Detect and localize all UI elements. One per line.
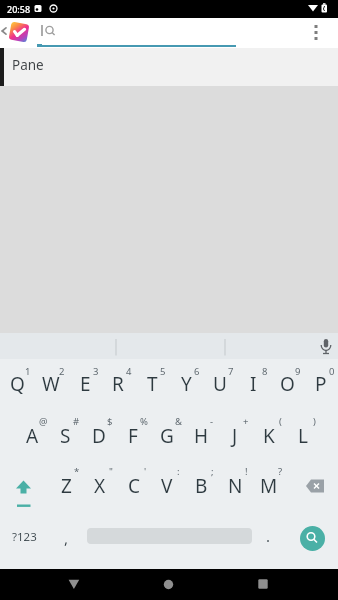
button[interactable] <box>318 337 334 358</box>
staticText: Q <box>10 371 25 397</box>
staticText: % <box>140 415 148 427</box>
button[interactable]: V <box>150 473 184 499</box>
button[interactable]: K <box>252 423 286 449</box>
staticText: K <box>263 423 275 449</box>
staticText: 20:58 <box>7 3 31 15</box>
staticText: * <box>74 465 80 477</box>
button[interactable]: U <box>203 371 237 397</box>
button[interactable] <box>298 474 332 498</box>
staticText: . <box>266 526 271 546</box>
staticText: I <box>250 371 257 397</box>
staticText: D <box>92 423 106 449</box>
staticText: E <box>80 371 91 397</box>
staticText: 2 <box>59 365 65 377</box>
staticText: 1 <box>25 365 31 377</box>
staticText: ; <box>211 465 214 477</box>
button[interactable]: R <box>101 371 135 397</box>
button[interactable] <box>156 572 180 596</box>
button[interactable] <box>62 572 86 596</box>
staticText: Z <box>61 473 72 499</box>
button[interactable]: N <box>218 473 252 499</box>
button[interactable]: J <box>218 423 252 449</box>
button[interactable]: E <box>68 371 102 397</box>
staticText: 6 <box>194 365 200 377</box>
staticText: M <box>260 473 278 499</box>
staticText: , <box>64 528 69 548</box>
button[interactable] <box>250 572 274 596</box>
button[interactable] <box>0 25 10 37</box>
staticText: ?123 <box>12 529 37 545</box>
staticText: R <box>112 371 124 397</box>
staticText: B <box>195 473 208 499</box>
staticText: : <box>177 465 180 477</box>
button[interactable]: Z <box>49 473 83 499</box>
button[interactable]: F <box>116 423 150 449</box>
staticText: G <box>160 423 174 449</box>
staticText: ' <box>144 465 147 477</box>
staticText: & <box>175 415 182 427</box>
button[interactable]: B <box>184 473 218 499</box>
staticText: S <box>60 423 71 449</box>
staticText: 3 <box>93 365 99 377</box>
staticText: 9 <box>295 365 301 377</box>
button[interactable] <box>37 20 237 44</box>
button[interactable]: G <box>150 423 184 449</box>
button[interactable] <box>0 48 338 86</box>
button[interactable]: L <box>286 423 320 449</box>
button[interactable] <box>308 22 324 44</box>
staticText: 5 <box>160 365 166 377</box>
button[interactable]: D <box>82 423 116 449</box>
staticText: 0 <box>329 365 335 377</box>
staticText: H <box>194 423 209 449</box>
button[interactable]: M <box>252 473 286 499</box>
staticText: J <box>232 423 238 449</box>
button[interactable]: S <box>48 423 82 449</box>
button[interactable]: T <box>135 371 169 397</box>
staticText: ( <box>279 415 282 427</box>
staticText: ) <box>313 415 316 427</box>
button[interactable]: ?123 <box>8 526 40 548</box>
button[interactable]: C <box>117 473 151 499</box>
button[interactable] <box>6 470 40 510</box>
staticText: W <box>42 371 60 397</box>
staticText: @ <box>39 415 48 427</box>
staticText: 7 <box>228 365 234 377</box>
staticText: 8 <box>262 365 268 377</box>
button[interactable]: W <box>34 371 68 397</box>
button[interactable]: P <box>304 371 338 397</box>
button[interactable]: I <box>236 371 270 397</box>
staticText: Pane <box>12 56 44 74</box>
staticText: A <box>26 423 39 449</box>
button[interactable]: Y <box>169 371 203 397</box>
staticText: V <box>161 473 173 499</box>
staticText: X <box>94 473 106 499</box>
staticText: ! <box>245 465 248 477</box>
staticText: F <box>128 423 138 449</box>
button[interactable] <box>300 526 325 551</box>
staticText: T <box>147 371 158 397</box>
staticText: P <box>315 371 327 397</box>
staticText: L <box>298 423 308 449</box>
staticText: " <box>109 465 113 477</box>
button[interactable]: O <box>270 371 304 397</box>
button[interactable]: A <box>15 423 49 449</box>
button[interactable]: X <box>83 473 117 499</box>
button[interactable]: Q <box>0 371 34 397</box>
staticText: 4 <box>126 365 132 377</box>
button[interactable]: H <box>184 423 218 449</box>
staticText: $ <box>107 415 113 427</box>
button[interactable]: , <box>56 527 76 549</box>
staticText: U <box>213 371 227 397</box>
staticText: C <box>128 473 141 499</box>
staticText: + <box>243 415 249 427</box>
staticText: # <box>73 415 80 427</box>
staticText: ? <box>278 465 283 477</box>
button[interactable]: . <box>258 525 278 547</box>
staticText: Y <box>181 371 192 397</box>
staticText: - <box>210 415 214 427</box>
staticText: N <box>228 473 243 499</box>
staticText: O <box>280 371 295 397</box>
